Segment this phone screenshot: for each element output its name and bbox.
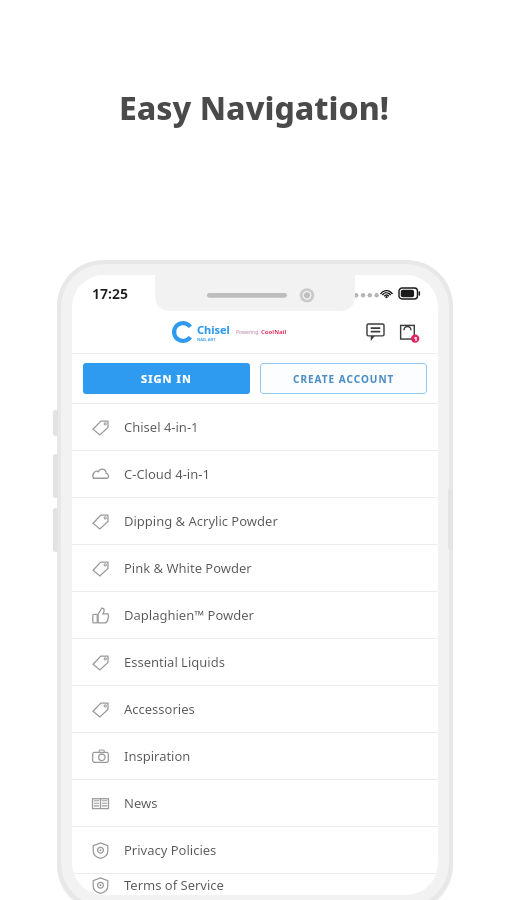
button[interactable]: Terms of Service — [72, 874, 438, 895]
staticText: CoolNail — [261, 328, 287, 336]
button[interactable]: CREATE ACCOUNT — [260, 363, 427, 394]
staticText: News — [124, 794, 158, 812]
button[interactable]: Dipping & Acrylic Powder — [72, 498, 438, 544]
button[interactable]: Pink & White Powder — [72, 545, 438, 591]
staticText: Privacy Policies — [124, 841, 217, 859]
button[interactable]: Cart — [394, 317, 424, 347]
staticText: Dipping & Acrylic Powder — [124, 512, 278, 530]
staticText: 17:25 — [92, 284, 128, 303]
staticText: Chisel — [197, 322, 230, 337]
staticText: Chisel 4-in-1 — [124, 418, 199, 436]
staticText: Inspiration — [124, 747, 191, 765]
staticText: 1 — [414, 335, 418, 343]
staticText: SIGN IN — [141, 371, 193, 386]
staticText: Essential Liquids — [124, 653, 225, 671]
button[interactable]: News — [72, 780, 438, 826]
button[interactable]: Accessories — [72, 686, 438, 732]
button[interactable]: Chisel 4-in-1 — [72, 404, 438, 450]
button[interactable]: C-Cloud 4-in-1 — [72, 451, 438, 497]
button[interactable]: Daplaghien™ Powder — [72, 592, 438, 638]
button[interactable]: Essential Liquids — [72, 639, 438, 685]
staticText: CREATE ACCOUNT — [293, 372, 395, 386]
staticText: Accessories — [124, 700, 195, 718]
button[interactable]: Messages — [360, 317, 390, 347]
button[interactable]: Inspiration — [72, 733, 438, 779]
staticText: Powering — [236, 329, 259, 336]
staticText: Easy Navigation! — [119, 86, 389, 130]
staticText: Daplaghien™ Powder — [124, 606, 254, 624]
button[interactable]: SIGN IN — [83, 363, 250, 394]
button[interactable]: Privacy Policies — [72, 827, 438, 873]
staticText: Terms of Service — [124, 876, 224, 894]
staticText: C-Cloud 4-in-1 — [124, 465, 210, 483]
staticText: NAIL ART — [197, 337, 216, 342]
staticText: Pink & White Powder — [124, 559, 252, 577]
